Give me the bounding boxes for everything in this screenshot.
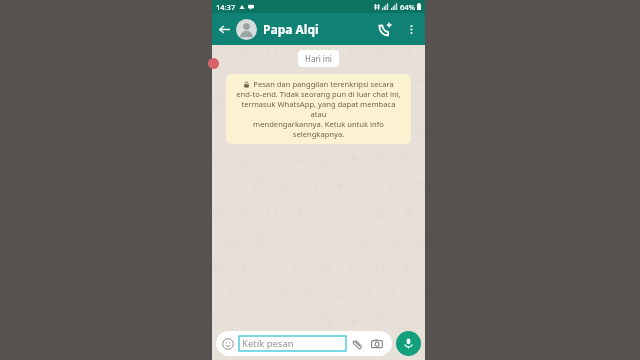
button[interactable]: Camera — [369, 336, 385, 352]
button[interactable]: Papa Alqi — [236, 13, 371, 45]
staticText: Pesan dan panggilan terenkripsi secara — [253, 79, 394, 89]
button[interactable]: Attach — [349, 336, 365, 352]
button[interactable]: Call — [371, 15, 399, 43]
staticText: Papa Alqi — [263, 21, 319, 37]
staticText: 14:37 — [216, 2, 236, 12]
staticText: end-to-end. Tidak seorang pun di luar ch… — [233, 89, 404, 139]
button[interactable]: Hari ini — [298, 50, 339, 67]
staticText: 64% — [400, 2, 415, 12]
staticText: Hari ini — [305, 53, 332, 64]
button[interactable]: Voice message — [396, 331, 421, 356]
button[interactable]: More options — [399, 17, 423, 41]
staticText: Ketik pesan — [242, 337, 294, 350]
button[interactable]: Pesan dan panggilan terenkripsi secara — [226, 74, 411, 144]
button[interactable]: Emoji — [216, 331, 392, 356]
other: Emoji — [221, 337, 235, 351]
button[interactable]: Back — [212, 17, 236, 41]
